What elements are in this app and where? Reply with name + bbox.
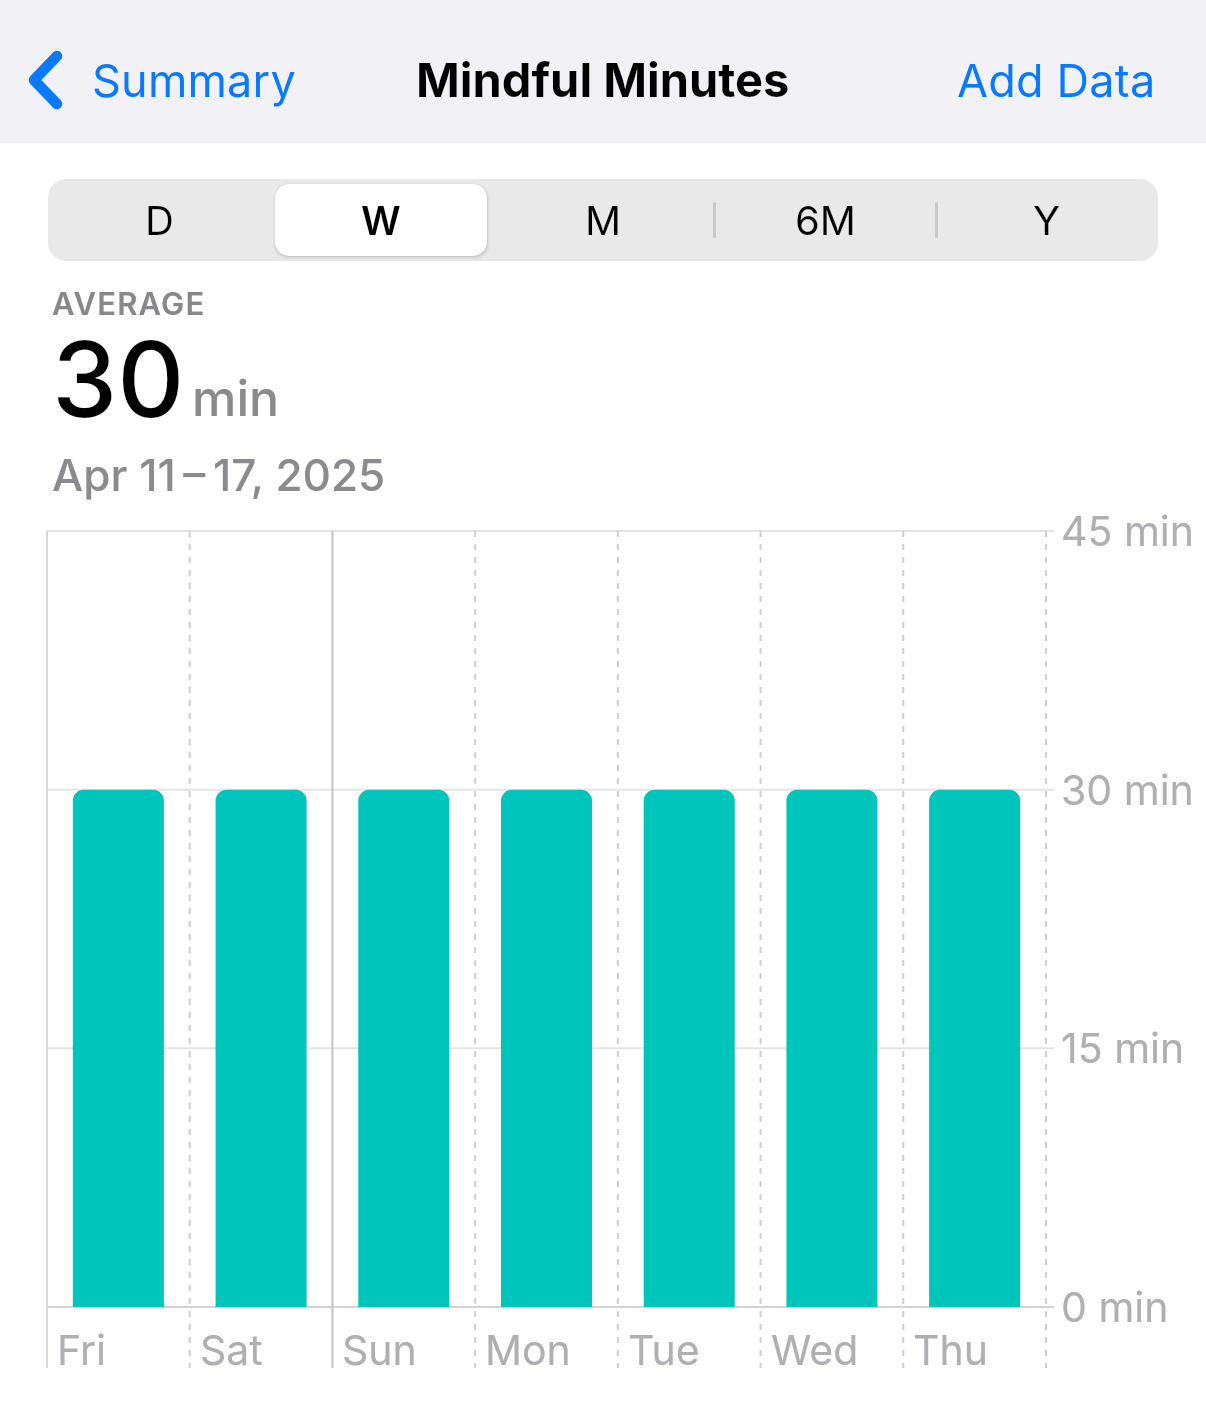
staticText: Wed	[771, 1325, 859, 1375]
staticText: AVERAGE	[52, 285, 206, 323]
staticText: 30 min	[1061, 765, 1194, 815]
staticText: M	[585, 196, 622, 244]
button[interactable]: M	[492, 179, 714, 261]
staticText: Thu	[913, 1325, 988, 1375]
button[interactable]: 6M	[714, 179, 936, 261]
staticText: 30	[52, 316, 185, 442]
staticText: 6M	[795, 196, 856, 244]
staticText: Y	[1033, 196, 1061, 244]
button[interactable]: Y	[936, 179, 1158, 261]
staticText: Mindful Minutes	[416, 51, 790, 108]
staticText: D	[145, 196, 174, 244]
button[interactable]: W	[270, 179, 492, 261]
staticText: 45 min	[1061, 506, 1195, 556]
staticText: 0 min	[1061, 1282, 1169, 1332]
staticText: Sat	[200, 1325, 263, 1375]
button[interactable]: Summary	[30, 51, 296, 109]
staticText: Summary	[92, 53, 296, 107]
staticText: W	[361, 197, 401, 244]
staticText: Apr 11 – 17, 2025	[52, 448, 386, 501]
staticText: 15 min	[1061, 1023, 1185, 1073]
button[interactable]: D	[48, 179, 270, 261]
staticText: min	[192, 368, 280, 428]
staticText: Fri	[57, 1325, 107, 1375]
button[interactable]: Add Data	[957, 53, 1156, 107]
staticText: Tue	[628, 1325, 700, 1375]
staticText: Mon	[485, 1325, 571, 1375]
staticText: Sun	[342, 1325, 417, 1375]
